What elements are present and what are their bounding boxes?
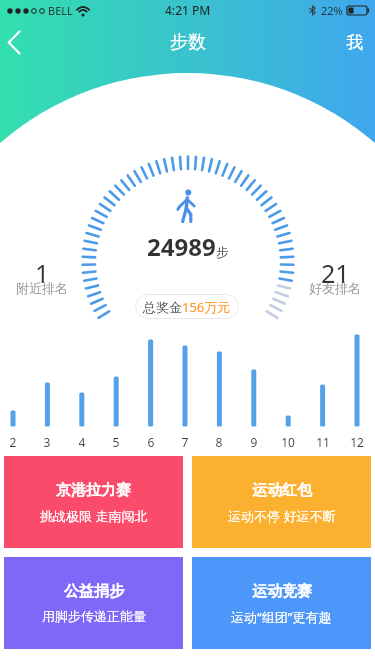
staticText: 1 — [35, 256, 50, 290]
button[interactable]: 运动竞赛 — [192, 557, 371, 649]
staticText: 用脚步传递正能量 — [42, 608, 146, 624]
button[interactable]: 运动红包 — [192, 456, 371, 548]
staticText: 好友排名 — [309, 280, 361, 296]
staticText: 11 — [311, 434, 335, 450]
button[interactable]: 京港拉力赛 — [4, 456, 183, 548]
staticText: 附近排名 — [16, 280, 68, 296]
button[interactable]: 我 — [346, 32, 363, 53]
staticText: 6 — [139, 434, 163, 450]
staticText: 2 — [1, 434, 25, 450]
staticText: 总奖金156万元 — [143, 298, 231, 316]
staticText: 4 — [70, 434, 94, 450]
staticText: 挑战极限 走南闯北 — [40, 507, 148, 525]
staticText: 7 — [173, 434, 197, 450]
staticText: 京港拉力赛 — [56, 481, 131, 500]
staticText: 运动“组团”更有趣 — [231, 608, 332, 626]
staticText: 3 — [35, 434, 59, 450]
staticText: 22% — [321, 3, 343, 18]
staticText: 公益捐步 — [64, 582, 124, 601]
staticText: 步 — [216, 244, 229, 260]
staticText: 运动红包 — [252, 481, 312, 500]
staticText: 5 — [104, 434, 128, 450]
staticText: 21 — [321, 256, 350, 290]
staticText: 8 — [207, 434, 231, 450]
staticText: 24989 — [147, 230, 216, 263]
staticText: 步数 — [170, 31, 206, 54]
staticText: 4:21 PM — [165, 2, 211, 18]
button[interactable] — [0, 20, 34, 64]
staticText: 12 — [345, 434, 369, 450]
staticText: BELL — [48, 3, 73, 18]
staticText: 运动不停 好运不断 — [228, 507, 336, 525]
staticText: 10 — [276, 434, 300, 450]
button[interactable]: 总奖金156万元 — [135, 294, 239, 319]
staticText: 运动竞赛 — [252, 582, 312, 601]
staticText: 我 — [346, 32, 363, 53]
button[interactable]: 公益捐步 — [4, 557, 183, 649]
staticText: 9 — [242, 434, 266, 450]
